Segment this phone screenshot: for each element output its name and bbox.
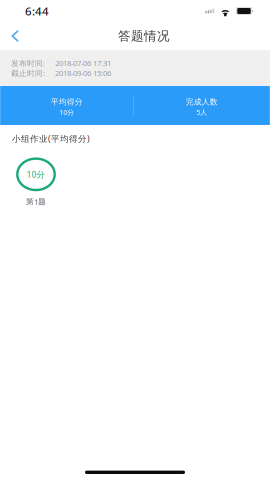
staticText: 答题情况: [118, 28, 170, 44]
staticText: 2018-07-06 17:31: [55, 58, 111, 68]
button[interactable]: 10分: [0, 157, 64, 207]
staticText: 第1题: [26, 196, 46, 207]
staticText: 完成人数: [186, 97, 218, 107]
staticText: 小组作业(平均得分): [12, 133, 90, 144]
staticText: 截止时间:: [11, 68, 45, 78]
staticText: 2018-09-06 15:06: [55, 68, 111, 78]
staticText: 10分: [59, 108, 74, 117]
staticText: 平均得分: [51, 97, 83, 107]
staticText: 发布时间:: [11, 58, 45, 68]
staticText: 6:44: [25, 3, 49, 19]
button[interactable]: Back: [0, 24, 33, 48]
staticText: 10分: [26, 169, 45, 180]
staticText: 5人: [196, 108, 207, 117]
